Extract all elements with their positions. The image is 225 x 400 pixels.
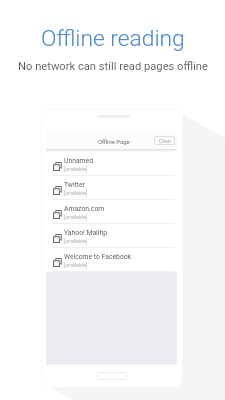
button[interactable]: Welcome to Facebook: [46, 248, 177, 272]
staticText: [available]: [64, 238, 88, 244]
staticText: Unnamed: [64, 157, 94, 165]
button[interactable]: Yahoo! Mailhp: [46, 224, 177, 248]
staticText: Amazon.com: [64, 205, 105, 213]
button[interactable]: Amazon.com: [46, 200, 177, 224]
button[interactable]: Unnamed: [46, 152, 177, 176]
staticText: Offline Page: [98, 139, 130, 146]
staticText: [available]: [64, 214, 88, 220]
staticText: [available]: [64, 262, 88, 268]
staticText: Twitter: [64, 181, 85, 189]
staticText: [available]: [64, 166, 88, 172]
staticText: Clear: [159, 138, 171, 144]
button[interactable]: Twitter: [46, 176, 177, 200]
button[interactable]: [96, 372, 128, 380]
staticText: [available]: [64, 190, 88, 196]
staticText: Offline reading: [41, 25, 185, 52]
staticText: No network can still read pages offline: [18, 60, 208, 73]
button[interactable]: Clear: [154, 136, 175, 145]
staticText: Welcome to Facebook: [64, 253, 132, 261]
staticText: Yahoo! Mailhp: [64, 229, 107, 237]
